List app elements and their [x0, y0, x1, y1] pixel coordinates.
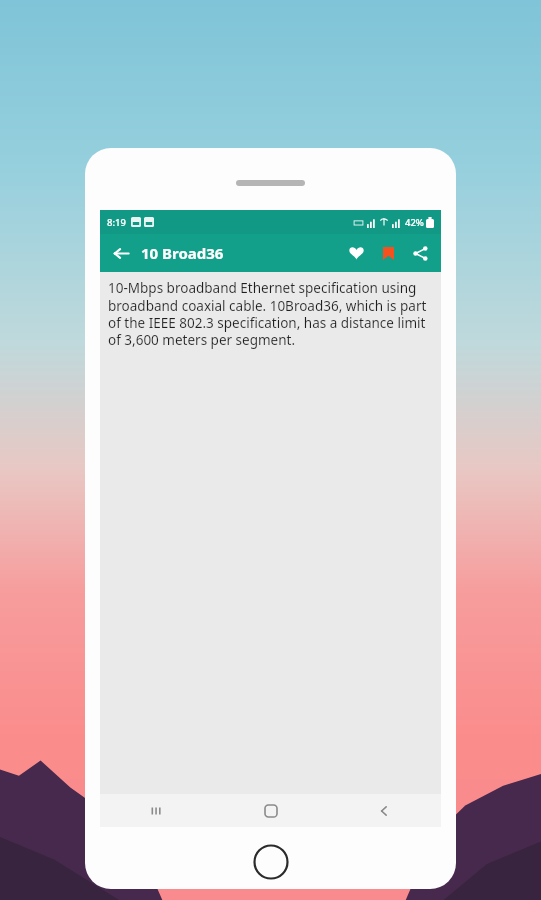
- button[interactable]: Home: [249, 794, 293, 827]
- button[interactable]: Share: [404, 237, 436, 269]
- button[interactable]: Favorite: [340, 237, 372, 269]
- staticText: 10-Mbps broadband Ethernet specification…: [108, 279, 431, 349]
- staticText: 42%: [405, 216, 424, 229]
- button[interactable]: Back: [106, 238, 136, 268]
- staticText: 10 Broad36: [141, 243, 224, 263]
- staticText: 8:19: [107, 216, 126, 229]
- button[interactable]: Recents: [135, 794, 179, 827]
- button[interactable]: Bookmark: [372, 237, 404, 269]
- button[interactable]: Back: [362, 794, 406, 827]
